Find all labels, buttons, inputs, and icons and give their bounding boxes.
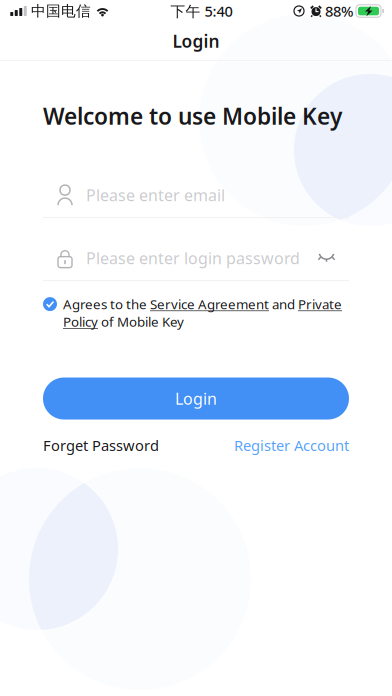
staticText: Please enter email <box>86 184 225 206</box>
staticText: Welcome to use Mobile Key <box>43 101 342 131</box>
staticText: Login <box>175 388 217 409</box>
staticText: 下午 5:40 <box>170 1 232 21</box>
button[interactable]: Show password <box>318 252 349 265</box>
button[interactable]: Login <box>43 377 349 419</box>
staticText: Agrees to the Service Agreement and Priv… <box>63 295 342 330</box>
staticText: Forget Password <box>43 435 159 455</box>
staticText: Register Account <box>234 435 349 455</box>
button[interactable]: Agree to the Service Agreement and Priva… <box>43 295 63 311</box>
staticText: Please enter login password <box>86 247 300 269</box>
button[interactable]: Register Account <box>234 435 349 455</box>
staticText: 中国电信 <box>31 2 91 20</box>
button[interactable]: Forget Password <box>43 435 159 455</box>
staticText: Login <box>172 29 219 52</box>
staticText: 88% <box>325 1 353 21</box>
